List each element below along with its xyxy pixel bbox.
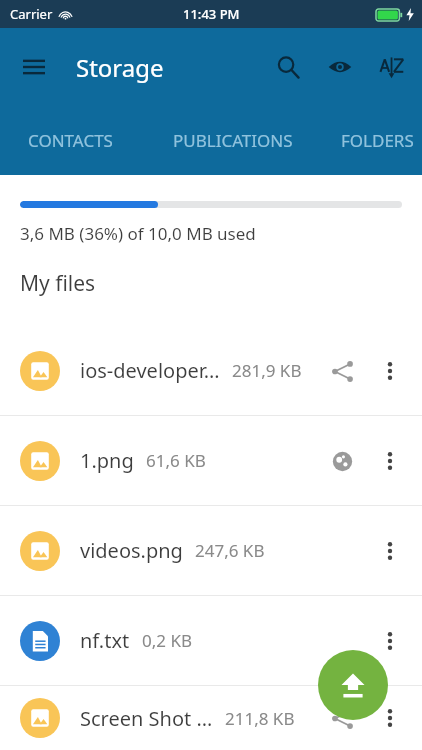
- staticText: Storage: [76, 51, 164, 84]
- staticText: PUBLICATIONS: [173, 129, 293, 152]
- button[interactable]: More options: [370, 441, 410, 481]
- button[interactable]: Menu: [12, 45, 56, 89]
- staticText: 281,9 KB: [232, 359, 302, 382]
- button[interactable]: nf.txt: [0, 596, 422, 685]
- button[interactable]: Preview: [318, 45, 362, 89]
- staticText: nf.txt: [80, 627, 130, 654]
- staticText: FOLDERS: [341, 129, 414, 152]
- button[interactable]: More options: [370, 698, 410, 738]
- staticText: 3,6 MB (36%) of 10,0 MB used: [20, 222, 256, 245]
- staticText: 0,2 KB: [142, 629, 192, 652]
- button[interactable]: 1.png: [0, 416, 422, 505]
- button[interactable]: ios-developer…: [0, 326, 422, 415]
- button[interactable]: More options: [370, 621, 410, 661]
- button[interactable]: More options: [370, 531, 410, 571]
- button[interactable]: Search: [266, 45, 310, 89]
- button[interactable]: PUBLICATIONS: [173, 129, 293, 152]
- staticText: videos.png: [80, 537, 183, 564]
- button[interactable]: CONTACTS: [28, 129, 113, 152]
- staticText: 1.png: [80, 447, 134, 474]
- button[interactable]: Share: [322, 351, 362, 391]
- staticText: My files: [20, 269, 96, 298]
- staticText: ios-developer…: [80, 357, 220, 384]
- button[interactable]: FOLDERS: [341, 129, 414, 152]
- button[interactable]: Shared publicly: [322, 441, 362, 481]
- button[interactable]: videos.png: [0, 506, 422, 595]
- staticText: Screen Shot …: [80, 705, 213, 732]
- button[interactable]: Share: [322, 698, 362, 738]
- staticText: 61,6 KB: [146, 449, 206, 472]
- staticText: 211,8 KB: [225, 707, 295, 730]
- button[interactable]: Screen Shot …: [0, 686, 422, 750]
- staticText: Carrier: [10, 5, 53, 23]
- staticText: 11:43 PM: [183, 5, 240, 23]
- staticText: 247,6 KB: [195, 539, 265, 562]
- button[interactable]: Upload: [318, 650, 388, 720]
- button[interactable]: More options: [370, 351, 410, 391]
- button[interactable]: Sort A to Z: [370, 45, 414, 89]
- staticText: CONTACTS: [28, 129, 113, 152]
